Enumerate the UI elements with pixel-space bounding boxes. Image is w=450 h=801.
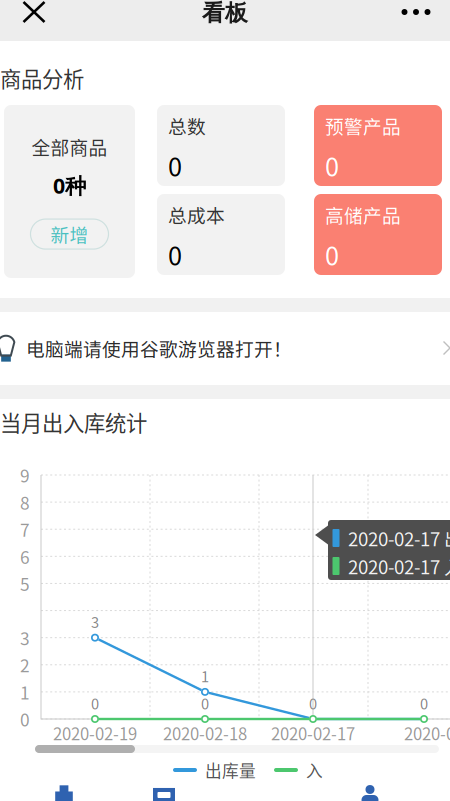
- staticText: 9: [20, 462, 30, 488]
- staticText: 2020-02-17 出: [348, 524, 450, 551]
- staticText: 2020-02-19: [53, 721, 137, 745]
- staticText: 0: [91, 692, 99, 714]
- staticText: 5: [20, 571, 30, 596]
- staticText: 3: [91, 611, 99, 632]
- button[interactable]: Dismiss notice: [435, 333, 450, 363]
- staticText: 0: [309, 692, 317, 714]
- staticText: 0种: [53, 171, 86, 200]
- staticText: 0: [168, 236, 182, 273]
- button[interactable]: Scan: [134, 780, 194, 801]
- staticText: 0: [420, 692, 428, 714]
- staticText: 6: [20, 544, 30, 569]
- staticText: 2020-02: [404, 721, 450, 745]
- staticText: 1: [20, 679, 30, 704]
- staticText: 8: [20, 490, 30, 515]
- staticText: 2020-02-17: [271, 721, 355, 745]
- button[interactable]: More options: [384, 0, 448, 32]
- staticText: 2: [20, 652, 30, 677]
- staticText: 0: [325, 236, 339, 273]
- staticText: 看板: [202, 0, 248, 27]
- staticText: 预警产品: [325, 112, 401, 139]
- staticText: 2020-02-18: [163, 721, 247, 745]
- button[interactable]: Close: [2, 0, 66, 31]
- staticText: 0: [168, 147, 182, 184]
- staticText: 当月出入库统计: [0, 407, 147, 437]
- staticText: 0: [325, 147, 339, 184]
- button[interactable]: Inventory: [34, 780, 94, 801]
- staticText: 2020-02-17 入: [348, 552, 450, 579]
- staticText: 总成本: [168, 201, 225, 228]
- staticText: 7: [20, 517, 30, 542]
- staticText: 出库量: [205, 758, 256, 782]
- staticText: 0: [20, 706, 30, 732]
- staticText: 新增: [50, 221, 88, 248]
- staticText: 总数: [168, 112, 206, 139]
- staticText: 3: [20, 625, 30, 650]
- staticText: 1: [201, 665, 209, 686]
- staticText: 入: [306, 758, 323, 782]
- button[interactable]: 新增: [30, 219, 108, 249]
- staticText: 高储产品: [325, 201, 401, 228]
- staticText: 商品分析: [0, 63, 84, 93]
- staticText: 0: [201, 692, 209, 714]
- staticText: 电脑端请使用谷歌游览器打开！: [26, 334, 292, 361]
- staticText: 全部商品: [31, 133, 107, 160]
- button[interactable]: Me: [340, 780, 400, 801]
